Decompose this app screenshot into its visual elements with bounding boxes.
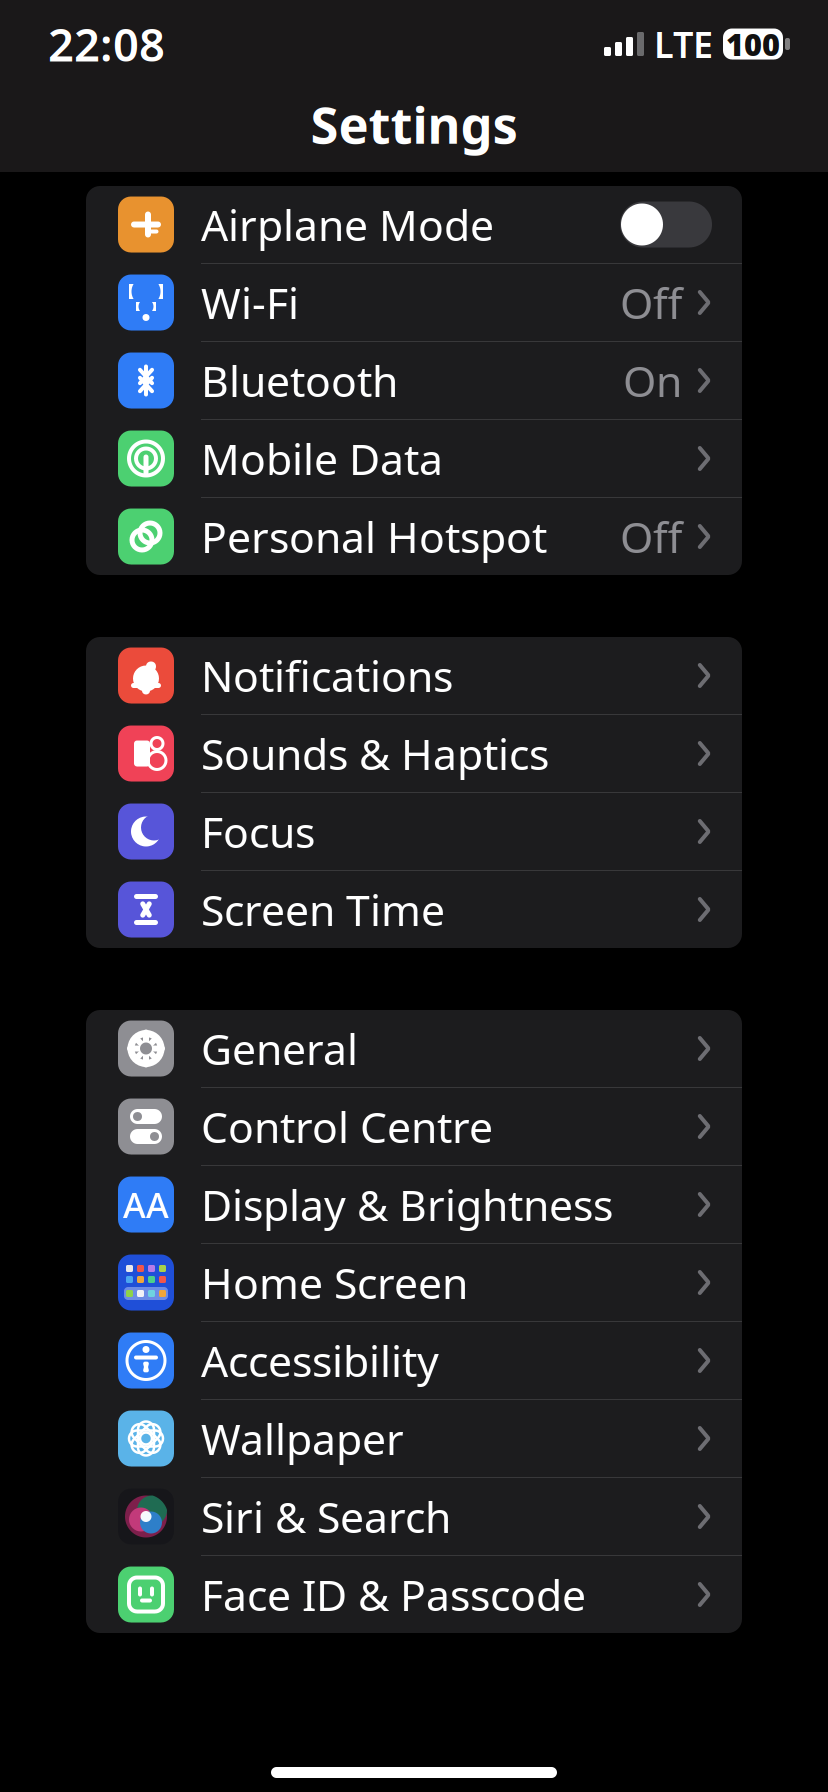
button[interactable]: Bluetooth <box>86 342 742 420</box>
button[interactable]: AA <box>86 1166 742 1244</box>
staticText: LTE <box>654 20 713 68</box>
button[interactable]: Face ID & Passcode <box>86 1556 742 1633</box>
staticText: General <box>201 1020 358 1077</box>
button[interactable]: Siri & Search <box>86 1478 742 1556</box>
staticText: On <box>623 352 682 409</box>
button[interactable]: Focus <box>86 793 742 871</box>
button[interactable]: Airplane Mode <box>86 186 742 264</box>
staticText: Airplane Mode <box>201 196 494 253</box>
staticText: Control Centre <box>201 1098 493 1155</box>
button[interactable]: Home Screen <box>86 1244 742 1322</box>
button[interactable]: Personal Hotspot <box>86 498 742 575</box>
button[interactable]: Wallpaper <box>86 1400 742 1478</box>
staticText: Wi-Fi <box>201 274 299 331</box>
staticText: Wallpaper <box>201 1410 404 1467</box>
staticText: Sounds & Haptics <box>201 725 549 782</box>
staticText: AA <box>123 1181 169 1227</box>
staticText: Screen Time <box>201 881 445 938</box>
button[interactable]: Screen Time <box>86 871 742 948</box>
button[interactable]: Notifications <box>86 637 742 715</box>
staticText: Accessibility <box>201 1332 439 1389</box>
staticText: Focus <box>201 803 315 860</box>
staticText: Off <box>620 274 682 331</box>
button[interactable]: Wi-Fi <box>86 264 742 342</box>
button[interactable]: General <box>86 1010 742 1088</box>
staticText: Home Screen <box>201 1254 468 1311</box>
button[interactable]: Mobile Data <box>86 420 742 498</box>
staticText: Personal Hotspot <box>201 508 547 565</box>
staticText: 22:08 <box>48 14 165 74</box>
staticText: Siri & Search <box>201 1488 451 1545</box>
button[interactable]: Accessibility <box>86 1322 742 1400</box>
button[interactable]: Sounds & Haptics <box>86 715 742 793</box>
staticText: 100 <box>726 24 780 64</box>
staticText: Bluetooth <box>201 352 398 409</box>
staticText: Notifications <box>201 647 453 704</box>
staticText: Display & Brightness <box>201 1176 613 1233</box>
staticText: Off <box>620 508 682 565</box>
button[interactable]: Control Centre <box>86 1088 742 1166</box>
staticText: Face ID & Passcode <box>201 1566 586 1623</box>
staticText: Settings <box>310 90 517 158</box>
staticText: Mobile Data <box>201 430 443 487</box>
